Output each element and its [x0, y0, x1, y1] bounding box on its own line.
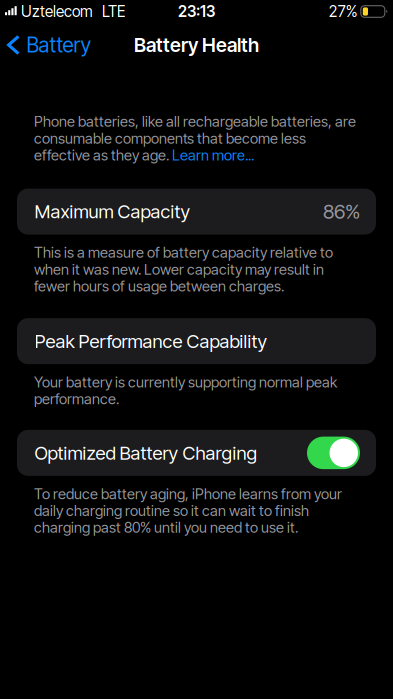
- staticText: Battery: [26, 32, 91, 57]
- staticText: Maximum Capacity: [34, 200, 190, 223]
- staticText: Phone batteries, like all rechargeable b…: [34, 113, 356, 164]
- staticText: 23:13: [178, 2, 215, 21]
- button[interactable]: Peak Performance Capability: [0, 318, 393, 364]
- button[interactable]: Battery: [0, 27, 97, 62]
- staticText: To reduce battery aging, iPhone learns f…: [34, 485, 342, 536]
- staticText: 27%: [329, 2, 358, 21]
- staticText: Optimized Battery Charging: [34, 442, 257, 464]
- staticText: Uztelecom: [21, 2, 93, 21]
- button[interactable]: Optimized Battery Charging: [0, 430, 393, 476]
- button[interactable]: Maximum Capacity: [0, 189, 393, 235]
- staticText: 86%: [323, 199, 360, 224]
- staticText: LTE: [102, 2, 125, 21]
- staticText: Battery Health: [134, 33, 259, 57]
- staticText: This is a measure of battery capacity re…: [34, 244, 333, 295]
- staticText: Peak Performance Capability: [34, 330, 267, 352]
- staticText: Your battery is currently supporting nor…: [34, 374, 337, 407]
